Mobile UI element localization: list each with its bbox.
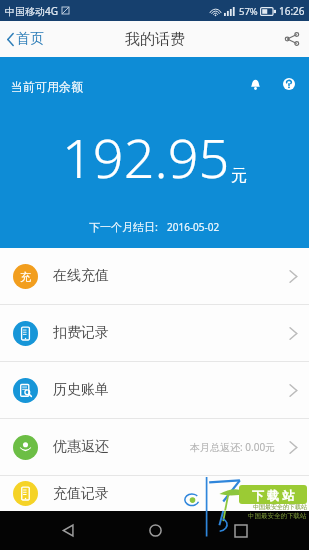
button[interactable]: Help [279,74,299,94]
staticText: 我的话费 [125,30,185,49]
button[interactable]: 首页 [0,23,54,55]
button[interactable]: 扣费记录 [0,305,309,361]
staticText: 扣费记录 [53,324,109,342]
staticText: 57% [239,5,258,18]
staticText: 本月总返还: 0.00元 [190,440,276,454]
staticText: 中国移动4G [5,4,58,18]
button[interactable]: Notifications [246,75,265,94]
staticText: 中国最安全的下载站 [248,512,307,520]
staticText: 历史账单 [53,381,109,399]
button[interactable]: 历史账单 [0,362,309,418]
staticText: 中国最安全的下载站 [253,503,307,511]
button[interactable]: Home [138,513,173,548]
staticText: 2016-05-02 [167,220,220,234]
button[interactable]: 充 [0,248,309,304]
button[interactable]: Back [51,513,86,548]
button[interactable]: 优惠返还 [0,419,309,475]
staticText: 元 [231,166,247,186]
staticText: 优惠返还 [53,438,109,456]
staticText: 充值记录 [53,485,109,503]
button[interactable]: Share [275,24,309,54]
staticText: 下一个月结日: [89,219,158,234]
staticText: 16:26 [279,4,305,18]
button[interactable]: 充值记录 [0,476,309,511]
button[interactable]: Recents [224,514,258,548]
staticText: 首页 [16,30,44,48]
staticText: 192.95 [62,120,230,194]
staticText: 当前可用余额 [11,79,83,94]
staticText: 下 载 站 [252,487,295,503]
staticText: 在线充值 [53,267,109,285]
staticText: 充 [20,270,31,284]
